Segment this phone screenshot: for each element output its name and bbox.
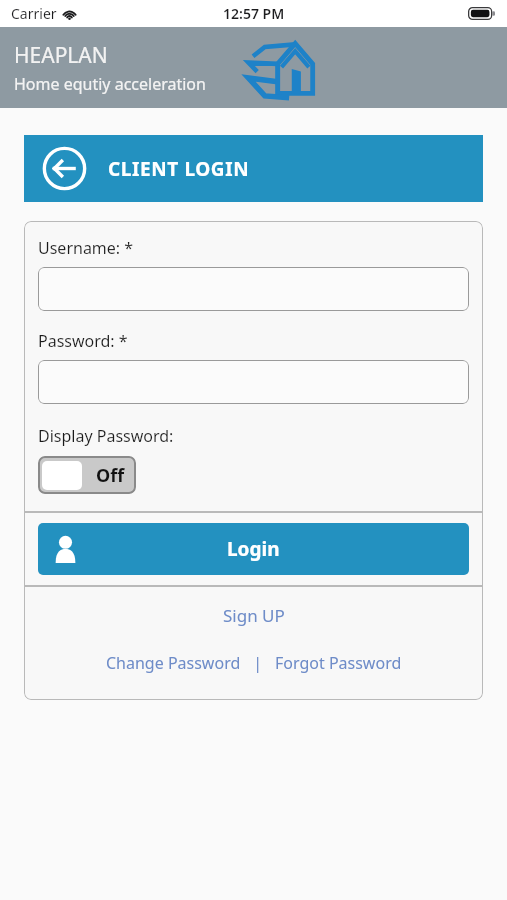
staticText: HEAPLAN: [14, 41, 108, 70]
staticText: |: [245, 652, 271, 674]
staticText: Change Password: [106, 652, 241, 674]
staticText: CLIENT LOGIN: [108, 156, 250, 182]
staticText: Home equtiy acceleration: [14, 73, 206, 95]
button[interactable]: Sign UP: [211, 600, 297, 631]
button[interactable]: Forgot Password: [271, 648, 406, 678]
staticText: Sign UP: [223, 604, 285, 627]
staticText: Forgot Password: [275, 652, 402, 674]
staticText: Carrier: [11, 4, 57, 23]
staticText: Off: [96, 463, 125, 488]
button[interactable]: Change Password: [102, 648, 245, 678]
staticText: Display Password:: [38, 425, 174, 447]
staticText: Login: [227, 536, 280, 562]
button[interactable]: [38, 360, 469, 404]
staticText: 12:57 PM: [223, 4, 285, 23]
staticText: Password: *: [38, 330, 128, 352]
button[interactable]: Display password toggle, Off: [38, 456, 136, 494]
button[interactable]: Login: [38, 523, 469, 575]
button[interactable]: [38, 267, 469, 311]
staticText: Username: *: [38, 237, 134, 259]
button[interactable]: Back: [41, 145, 88, 192]
button[interactable]: Back: [24, 135, 483, 202]
